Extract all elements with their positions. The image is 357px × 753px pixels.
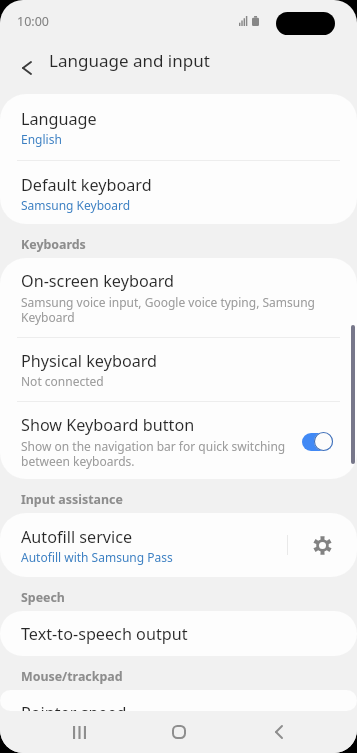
button[interactable]: Autofill service: [0, 513, 287, 577]
button[interactable]: Pointer speed: [0, 690, 357, 711]
staticText: Pointer speed: [21, 702, 127, 711]
staticText: 10:00: [17, 13, 49, 30]
staticText: Autofill service: [21, 526, 133, 548]
staticText: On-screen keyboard: [21, 270, 175, 292]
staticText: Language: [21, 108, 97, 130]
staticText: Physical keyboard: [21, 350, 158, 372]
staticText: Samsung Keyboard: [21, 197, 131, 213]
staticText: Language and input: [49, 49, 210, 72]
button[interactable]: Show Keyboard button: [0, 402, 357, 479]
staticText: Not connected: [21, 373, 104, 389]
staticText: Keyboards: [21, 236, 86, 253]
button[interactable]: Text-to-speech output: [0, 611, 357, 656]
button[interactable]: Home: [159, 711, 199, 753]
button[interactable]: Physical keyboard: [0, 338, 357, 401]
staticText: Show Keyboard button: [21, 414, 195, 436]
staticText: English: [21, 131, 62, 147]
button[interactable]: On-screen keyboard: [0, 258, 357, 337]
staticText: Input assistance: [21, 491, 123, 508]
staticText: Mouse/trackpad: [21, 668, 123, 685]
staticText: Default keyboard: [21, 174, 152, 196]
staticText: Autofill with Samsung Pass: [21, 549, 173, 565]
button[interactable]: Recent apps: [59, 711, 99, 753]
button[interactable]: Default keyboard: [0, 161, 357, 224]
staticText: Text-to-speech output: [21, 623, 188, 645]
button[interactable]: Back: [259, 711, 299, 753]
staticText: Samsung voice input, Google voice typing…: [21, 294, 333, 325]
staticText: Show on the navigation bar for quick swi…: [21, 438, 291, 469]
button[interactable]: Language: [0, 94, 357, 160]
staticText: Speech: [21, 589, 65, 606]
button[interactable]: Autofill service settings: [290, 513, 355, 577]
button[interactable]: Navigate up: [7, 48, 47, 88]
